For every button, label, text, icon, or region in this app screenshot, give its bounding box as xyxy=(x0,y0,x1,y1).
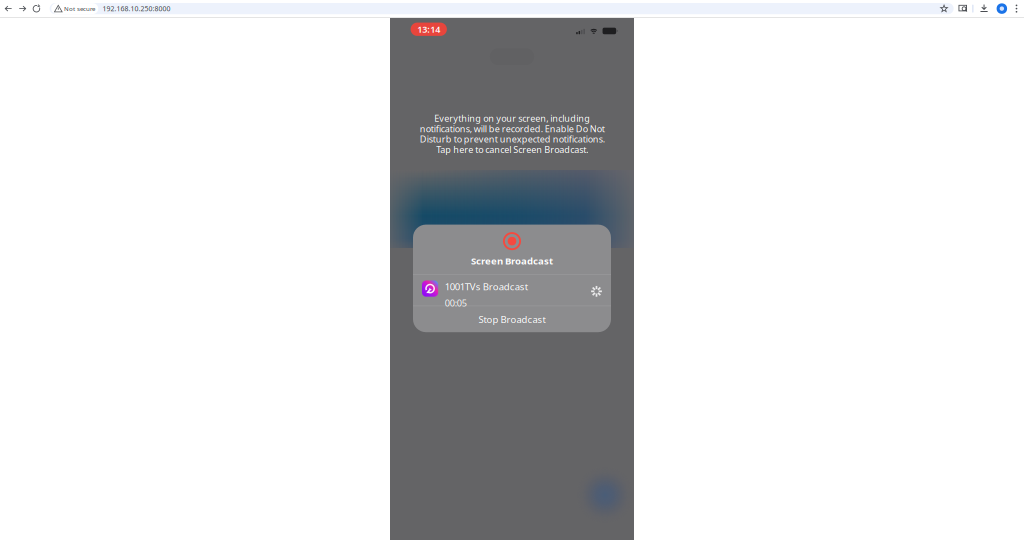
staticText: 192.168.10.250:8000 xyxy=(102,4,170,13)
staticText: 13:14 xyxy=(417,23,440,35)
button[interactable]: Downloads xyxy=(973,0,995,17)
staticText: Stop Broadcast xyxy=(478,313,545,326)
button[interactable]: Customize and control xyxy=(1009,0,1024,17)
staticText: Not secure xyxy=(64,4,95,13)
staticText: 00:05 xyxy=(445,297,467,309)
staticText: Everything on your screen, including not… xyxy=(419,113,604,155)
button[interactable]: Forward xyxy=(15,0,29,17)
button[interactable]: Back xyxy=(1,0,15,17)
staticText: 1001TVs Broadcast xyxy=(445,280,528,293)
staticText: Screen Broadcast xyxy=(471,254,553,267)
button[interactable]: Not secure xyxy=(50,3,954,14)
button[interactable]: Reload xyxy=(29,0,43,17)
button[interactable]: Stop Broadcast xyxy=(413,306,611,332)
button[interactable]: Profile xyxy=(995,0,1009,17)
button[interactable]: Search tabs xyxy=(954,0,972,17)
